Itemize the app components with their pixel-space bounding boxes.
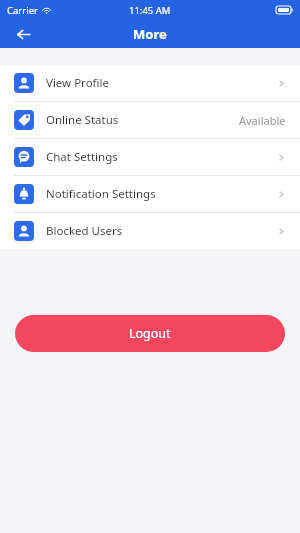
staticText: Online Status — [46, 112, 119, 128]
staticText: More — [133, 25, 167, 43]
staticText: Logout — [129, 325, 171, 342]
staticText: Blocked Users — [46, 223, 123, 239]
button[interactable]: Blocked Users — [0, 213, 300, 249]
staticText: Available — [239, 113, 286, 128]
button[interactable]: Logout — [15, 315, 285, 352]
staticText: Carrier — [7, 4, 38, 17]
button[interactable]: Notification Settings — [0, 176, 300, 213]
staticText: Chat Settings — [46, 149, 118, 165]
staticText: Notification Settings — [46, 186, 156, 202]
button[interactable]: Online Status — [0, 102, 300, 139]
button[interactable]: Back — [10, 21, 36, 47]
button[interactable]: Chat Settings — [0, 139, 300, 176]
staticText: View Profile — [46, 75, 109, 91]
button[interactable]: View Profile — [0, 65, 300, 102]
staticText: 11:45 AM — [129, 4, 171, 17]
